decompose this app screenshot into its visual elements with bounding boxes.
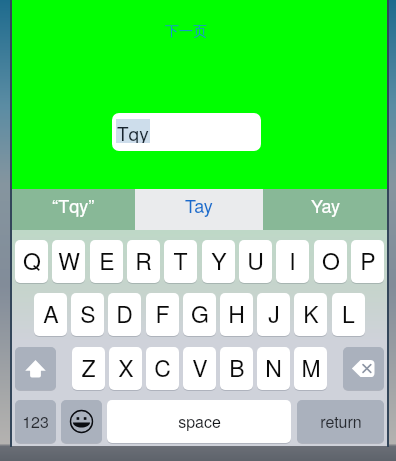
- staticText: P: [360, 244, 376, 277]
- button[interactable]: J: [257, 293, 290, 336]
- button[interactable]: A: [34, 293, 67, 336]
- button[interactable]: R: [127, 240, 160, 283]
- staticText: Tqy: [117, 119, 149, 143]
- button[interactable]: “Tqy”: [12, 189, 135, 230]
- staticText: R: [135, 244, 152, 277]
- staticText: B: [229, 351, 245, 384]
- button[interactable]: K: [294, 293, 327, 336]
- staticText: S: [80, 297, 96, 330]
- button[interactable]: P: [351, 240, 384, 283]
- staticText: 下一页: [165, 23, 207, 41]
- staticText: “Tqy”: [52, 192, 95, 218]
- staticText: 123: [22, 410, 49, 433]
- staticText: X: [118, 351, 134, 384]
- button[interactable]: W: [52, 240, 85, 283]
- staticText: G: [191, 297, 209, 330]
- staticText: space: [178, 410, 221, 433]
- staticText: M: [301, 351, 321, 384]
- button[interactable]: 123: [15, 400, 56, 443]
- staticText: Q: [23, 244, 41, 277]
- staticText: L: [342, 297, 355, 330]
- staticText: C: [154, 351, 171, 384]
- button[interactable]: Y: [202, 240, 235, 283]
- staticText: return: [320, 410, 362, 433]
- button[interactable]: N: [257, 347, 290, 390]
- button[interactable]: Z: [72, 347, 105, 390]
- staticText: U: [247, 244, 264, 277]
- button[interactable]: S: [71, 293, 104, 336]
- staticText: Y: [211, 244, 227, 277]
- staticText: K: [303, 297, 319, 330]
- button[interactable]: I: [276, 240, 309, 283]
- staticText: E: [99, 244, 115, 277]
- staticText: Tay: [185, 192, 213, 218]
- button[interactable]: C: [146, 347, 179, 390]
- button[interactable]: 下一页: [165, 23, 207, 41]
- button[interactable]: D: [108, 293, 141, 336]
- button[interactable]: Q: [15, 240, 48, 283]
- staticText: Yay: [311, 192, 340, 218]
- staticText: Z: [81, 351, 96, 384]
- button[interactable]: Shift: [15, 347, 56, 390]
- staticText: H: [228, 297, 245, 330]
- staticText: N: [265, 351, 282, 384]
- button[interactable]: Yay: [263, 189, 387, 230]
- button[interactable]: X: [109, 347, 142, 390]
- staticText: I: [289, 244, 296, 277]
- button[interactable]: H: [220, 293, 253, 336]
- button[interactable]: M: [294, 347, 327, 390]
- staticText: O: [322, 244, 340, 277]
- button[interactable]: Emoji: [61, 400, 102, 443]
- staticText: D: [116, 297, 133, 330]
- staticText: W: [58, 244, 80, 277]
- button[interactable]: space: [107, 400, 291, 443]
- button[interactable]: T: [164, 240, 197, 283]
- staticText: A: [43, 297, 59, 330]
- button[interactable]: F: [146, 293, 179, 336]
- button[interactable]: L: [332, 293, 365, 336]
- button[interactable]: Backspace: [343, 347, 384, 390]
- button[interactable]: U: [239, 240, 272, 283]
- button[interactable]: G: [183, 293, 216, 336]
- staticText: V: [192, 351, 208, 384]
- button[interactable]: O: [314, 240, 347, 283]
- button[interactable]: Tqy: [112, 113, 261, 151]
- staticText: T: [173, 244, 188, 277]
- button[interactable]: Tay: [135, 189, 263, 230]
- button[interactable]: E: [90, 240, 123, 283]
- staticText: J: [268, 297, 280, 330]
- button[interactable]: B: [220, 347, 253, 390]
- button[interactable]: return: [297, 400, 384, 443]
- staticText: F: [155, 297, 170, 330]
- button[interactable]: V: [183, 347, 216, 390]
